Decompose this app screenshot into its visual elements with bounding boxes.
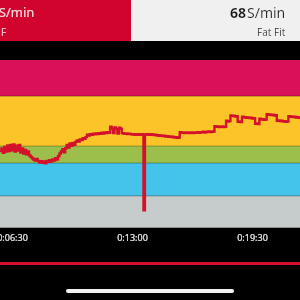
button[interactable]: 68 <box>131 0 300 41</box>
staticText: 68 <box>230 3 247 22</box>
button[interactable] <box>0 60 300 227</box>
button[interactable]: Home <box>66 289 234 293</box>
staticText: S/min <box>247 3 286 22</box>
staticText: 0:06:30 <box>0 231 28 243</box>
staticText: 86S/min <box>0 3 35 21</box>
staticText: Fat Fit <box>257 25 286 39</box>
staticText: Fat F <box>0 25 7 39</box>
button[interactable]: 86S/min <box>0 0 131 41</box>
staticText: 0:13:00 <box>117 231 148 243</box>
staticText: 0:19:30 <box>237 231 268 243</box>
